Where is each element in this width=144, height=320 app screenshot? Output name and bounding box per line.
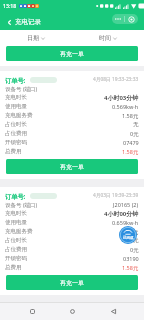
button[interactable]: Back	[4, 17, 14, 27]
button[interactable]: 再充一单	[6, 159, 138, 174]
staticText: 07479	[123, 139, 139, 146]
staticText: 设备号 (端口)	[5, 201, 38, 209]
button[interactable]: Close	[125, 14, 138, 24]
staticText: 0.659kw·h	[112, 219, 139, 226]
staticText: 无	[133, 237, 139, 244]
staticText: 占位费用	[5, 246, 27, 253]
staticText: 再充一单	[60, 50, 84, 58]
staticText: 总费用	[5, 264, 22, 271]
button[interactable]: 日期	[0, 30, 72, 46]
staticText: 4月03日 19:39-23:39	[93, 192, 139, 199]
staticText: 1.58元	[122, 112, 139, 120]
button[interactable]: 再充一单	[6, 275, 138, 290]
staticText: 4小时03分钟	[104, 94, 139, 102]
button[interactable]: Recents	[23, 303, 41, 320]
staticText: 0元	[130, 130, 139, 138]
button[interactable]: Back	[104, 303, 122, 320]
staticText: 再充一单	[60, 279, 84, 287]
staticText: 03190	[123, 255, 139, 262]
staticText: 订单号:	[5, 76, 26, 84]
staticText: 1.58元	[122, 148, 139, 156]
staticText: 占位费用	[5, 130, 27, 137]
staticText: 总费用	[5, 148, 22, 155]
staticText: 0元	[130, 246, 139, 254]
staticText: 设备号 (端口)	[5, 85, 38, 93]
staticText: 占位时长	[5, 121, 27, 128]
staticText: 占位时长	[5, 237, 27, 244]
staticText: 0.569kw·h	[112, 103, 139, 110]
button[interactable]: 时间	[72, 30, 144, 46]
staticText: 4小时00分钟	[104, 210, 139, 218]
staticText: 时间	[99, 34, 111, 42]
staticText: 日期	[27, 34, 39, 42]
staticText: 开锁密码	[5, 139, 27, 146]
staticText: 已完成	[123, 236, 134, 240]
staticText: 充电记录	[15, 18, 41, 26]
button[interactable]: 再充一单	[6, 46, 138, 61]
staticText: 再充一单	[60, 163, 84, 171]
staticText: 充电服务费	[5, 228, 33, 235]
staticText: J20165 (2)	[113, 201, 139, 208]
staticText: 充电时长	[5, 94, 27, 101]
staticText: 充电服务费	[5, 112, 33, 119]
staticText: 13:18	[3, 2, 17, 9]
staticText: 使用电量	[5, 103, 27, 110]
button[interactable]: Home	[63, 303, 81, 320]
staticText: 充电时长	[5, 210, 27, 217]
staticText: 4月08日 19:33-23:33	[93, 76, 139, 83]
staticText: 开锁密码	[5, 255, 27, 262]
staticText: 1.58元	[122, 264, 139, 272]
staticText: 1.58元	[122, 228, 139, 236]
staticText: 使用电量	[5, 219, 27, 226]
staticText: 无	[133, 121, 139, 128]
staticText: 订单号:	[5, 192, 26, 200]
button[interactable]: More options	[112, 14, 124, 24]
